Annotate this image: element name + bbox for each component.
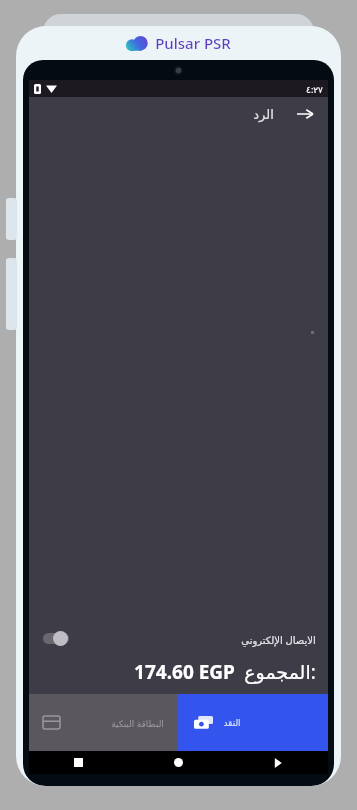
button[interactable]: الرد xyxy=(249,103,278,126)
button[interactable]: Back xyxy=(228,751,328,774)
staticText: الايصال الإلكتروني xyxy=(241,633,316,647)
staticText: الرد xyxy=(253,107,274,122)
staticText: Pulsar PSR xyxy=(155,33,231,53)
staticText: المجموع: xyxy=(244,659,316,685)
button[interactable]: Home xyxy=(128,751,228,774)
staticText: 174.60 EGP xyxy=(134,659,235,685)
staticText: النقد xyxy=(223,718,241,728)
button[interactable]: Back xyxy=(292,101,318,127)
staticText: ٤:٢٧ xyxy=(306,83,323,95)
button[interactable]: البطاقة البنكية xyxy=(29,694,178,751)
button[interactable]: النقد xyxy=(178,694,328,751)
button[interactable]: E-receipt toggle xyxy=(41,631,71,650)
button[interactable]: Recents xyxy=(29,751,128,774)
staticText: البطاقة البنكية xyxy=(111,717,164,729)
